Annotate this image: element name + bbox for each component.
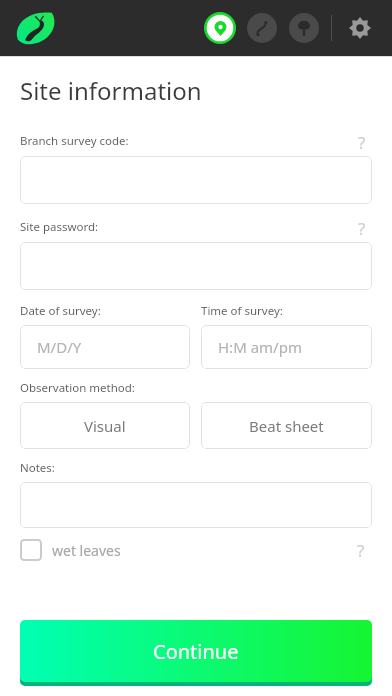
staticText: Observation method: [20,380,135,396]
button[interactable]: Home [12,6,64,50]
button[interactable]: M/D/Y [20,325,190,369]
button[interactable]: Continue [20,620,372,682]
button[interactable]: H:M am/pm [201,325,372,369]
staticText: ? [358,131,366,151]
button[interactable]: Text field [20,242,372,290]
button[interactable]: Help [352,131,372,151]
button[interactable]: Insects [243,9,281,47]
staticText: ? [358,217,366,237]
button[interactable]: Help [352,217,372,237]
staticText: M/D/Y [37,337,82,357]
button[interactable]: Trees [285,9,323,47]
button[interactable]: Beat sheet [201,402,372,449]
staticText: Site password: [20,219,99,235]
staticText: Date of survey: [20,303,101,319]
button[interactable]: Text field [20,156,372,204]
button[interactable]: Help [350,539,372,561]
button[interactable]: Settings [342,10,378,46]
staticText: Beat sheet [249,416,324,436]
staticText: ? [357,539,365,561]
staticText: Visual [84,416,126,436]
staticText: wet leaves [52,541,121,560]
staticText: Continue [153,638,239,665]
staticText: Notes: [20,460,55,476]
staticText: Site information [20,74,202,107]
button[interactable]: Site [201,9,239,47]
button[interactable]: Text field [20,482,372,528]
staticText: Time of survey: [201,303,283,319]
button[interactable]: Visual [20,402,190,449]
button[interactable]: wet leaves [20,539,121,561]
staticText: Branch survey code: [20,133,129,149]
staticText: H:M am/pm [218,337,302,357]
